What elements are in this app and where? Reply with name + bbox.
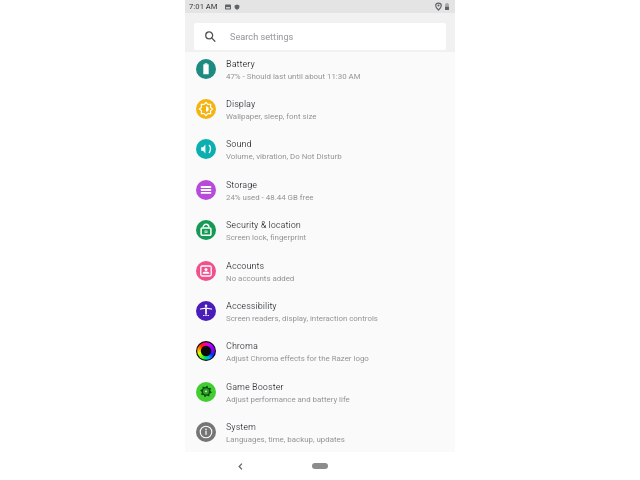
staticText: Wallpaper, sleep, font size xyxy=(226,112,317,121)
button[interactable]: Chroma xyxy=(185,331,455,371)
button[interactable]: System xyxy=(185,412,455,452)
staticText: 7:01 AM xyxy=(189,2,218,11)
staticText: Storage xyxy=(226,180,258,191)
staticText: Security & location xyxy=(226,220,301,231)
staticText: Sound xyxy=(226,139,252,150)
button[interactable]: Accessibility xyxy=(185,291,455,331)
button[interactable]: Back xyxy=(228,454,252,478)
staticText: Accounts xyxy=(226,261,265,272)
staticText: Battery xyxy=(226,59,255,70)
button[interactable]: Home xyxy=(300,458,340,474)
button[interactable]: Security & location xyxy=(185,210,455,250)
staticText: Search settings xyxy=(230,31,294,42)
staticText: Adjust performance and battery life xyxy=(226,395,350,404)
staticText: 47% - Should last until about 11:30 AM xyxy=(226,72,361,81)
staticText: Display xyxy=(226,99,256,110)
staticText: Screen readers, display, interaction con… xyxy=(226,314,378,323)
staticText: Volume, vibration, Do Not Disturb xyxy=(226,152,342,161)
button[interactable]: Game Booster xyxy=(185,372,455,412)
button[interactable]: Search settings xyxy=(194,23,446,50)
staticText: Screen lock, fingerprint xyxy=(226,233,307,242)
staticText: Chroma xyxy=(226,341,258,352)
staticText: Accessibility xyxy=(226,301,277,312)
staticText: Adjust Chroma effects for the Razer logo xyxy=(226,354,369,363)
staticText: Languages, time, backup, updates xyxy=(226,435,345,444)
button[interactable]: Sound xyxy=(185,129,455,169)
staticText: Game Booster xyxy=(226,382,284,393)
staticText: No accounts added xyxy=(226,274,295,283)
staticText: System xyxy=(226,422,257,433)
staticText: 24% used - 48.44 GB free xyxy=(226,193,314,202)
button[interactable]: Storage xyxy=(185,170,455,210)
button[interactable]: Display xyxy=(185,89,455,129)
button[interactable]: Accounts xyxy=(185,251,455,291)
button[interactable]: Battery xyxy=(185,49,455,89)
